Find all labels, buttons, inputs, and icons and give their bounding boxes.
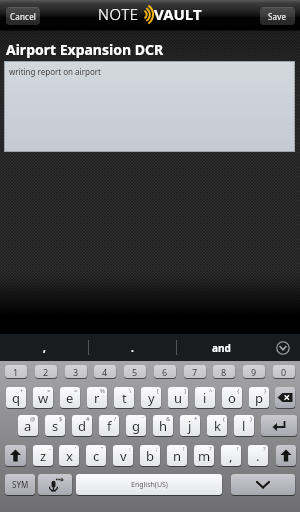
staticText: $ [59, 415, 63, 423]
button[interactable]: 1 [5, 365, 27, 378]
staticText: { [237, 387, 240, 395]
button[interactable]: w [33, 387, 53, 408]
button[interactable]: . [248, 445, 268, 466]
staticText: Save [268, 11, 287, 22]
staticText: 6 [162, 366, 168, 378]
button[interactable]: writing report on airport [5, 62, 294, 151]
button[interactable]: v [113, 445, 133, 466]
button[interactable]: Enter [261, 415, 297, 436]
staticText: b [146, 447, 154, 465]
button[interactable]: , [221, 445, 241, 466]
staticText: = [74, 387, 78, 395]
button[interactable]: 8 [213, 365, 235, 378]
staticText: } [264, 387, 267, 395]
staticText: [ [157, 387, 159, 395]
staticText: + [20, 387, 24, 395]
button[interactable]: z [33, 445, 53, 466]
staticText: / [114, 415, 117, 423]
button[interactable]: t [114, 387, 134, 408]
staticText: # [86, 415, 90, 423]
button[interactable]: j [180, 415, 200, 436]
staticText: ) [250, 415, 252, 423]
staticText: i [203, 389, 207, 407]
staticText: " [101, 445, 104, 453]
staticText: s [52, 417, 59, 435]
staticText: t [122, 389, 127, 407]
staticText: VAULT [154, 4, 202, 24]
button[interactable]: k [207, 415, 227, 436]
staticText: ] [184, 387, 186, 395]
staticText: ! [237, 445, 239, 453]
staticText: Airport Expansion DCR [6, 40, 164, 59]
staticText: \ [129, 387, 132, 395]
button[interactable]: Cancel [6, 7, 40, 25]
button[interactable]: Voice input [38, 474, 72, 495]
staticText: z [40, 447, 47, 465]
staticText: 2 [43, 366, 49, 378]
button[interactable]: p [249, 387, 269, 408]
staticText: ? [263, 445, 266, 453]
button[interactable]: l [234, 415, 254, 436]
button[interactable]: g [126, 415, 146, 436]
button[interactable]: x [59, 445, 79, 466]
button[interactable]: English(US) [76, 474, 222, 495]
staticText: and [212, 341, 231, 355]
staticText: @ [30, 415, 36, 423]
staticText: u [174, 389, 183, 407]
staticText: ? [209, 445, 212, 453]
button[interactable]: . [89, 334, 176, 361]
button[interactable]: , [0, 334, 88, 361]
button[interactable]: i [195, 387, 215, 408]
staticText: x [66, 447, 73, 465]
staticText: ` [142, 415, 144, 423]
staticText: . [256, 447, 260, 465]
button[interactable]: Expand suggestions [265, 334, 300, 361]
staticText: y [148, 389, 155, 407]
staticText: . [131, 341, 134, 355]
button[interactable]: a [18, 415, 38, 436]
staticText: * [194, 415, 198, 423]
staticText: v [120, 447, 127, 465]
staticText: c [93, 447, 100, 465]
button[interactable]: Hide keyboard [231, 474, 295, 495]
button[interactable]: y [141, 387, 161, 408]
staticText: h [159, 417, 168, 435]
staticText: ' [75, 445, 77, 453]
button[interactable]: n [167, 445, 187, 466]
button[interactable]: f [99, 415, 119, 436]
button[interactable]: r [87, 387, 107, 408]
button[interactable]: m [194, 445, 214, 466]
button[interactable]: 0 [273, 365, 295, 378]
staticText: ! [183, 445, 185, 453]
button[interactable]: c [86, 445, 106, 466]
staticText: 4 [102, 366, 108, 378]
button[interactable]: and [177, 334, 265, 361]
button[interactable]: SYM [5, 474, 35, 495]
button[interactable]: d [72, 415, 92, 436]
button[interactable]: h [153, 415, 173, 436]
button[interactable]: 7 [184, 365, 206, 378]
staticText: 8 [221, 366, 227, 378]
button[interactable]: q [6, 387, 26, 408]
button[interactable]: 3 [65, 365, 87, 378]
button[interactable]: 2 [35, 365, 57, 378]
button[interactable]: 6 [154, 365, 176, 378]
button[interactable]: o [222, 387, 242, 408]
button[interactable]: Shift [5, 445, 26, 466]
button[interactable]: s [45, 415, 65, 436]
button[interactable]: Shift [276, 445, 296, 466]
button[interactable]: 4 [94, 365, 116, 378]
staticText: 9 [251, 366, 257, 378]
button[interactable]: Backspace [275, 387, 295, 408]
button[interactable]: 5 [124, 365, 146, 378]
staticText: a [24, 417, 32, 435]
staticText: , [229, 447, 233, 465]
button[interactable]: b [140, 445, 160, 466]
button[interactable]: e [60, 387, 80, 408]
button[interactable]: 9 [243, 365, 265, 378]
staticText: 3 [73, 366, 79, 378]
staticText: l [242, 417, 246, 435]
button[interactable]: u [168, 387, 188, 408]
button[interactable]: Save [260, 7, 295, 25]
staticText: 0 [281, 366, 287, 378]
